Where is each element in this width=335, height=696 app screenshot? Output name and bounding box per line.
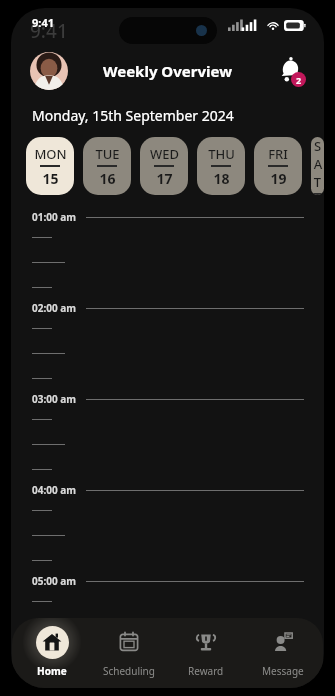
staticText: Message xyxy=(262,664,304,678)
staticText: 04:00 am xyxy=(32,483,77,497)
staticText: MON xyxy=(34,145,67,163)
staticText: Reward xyxy=(188,664,224,678)
button[interactable]: Reward xyxy=(169,623,243,678)
staticText: 18 xyxy=(213,169,230,188)
button[interactable]: Message xyxy=(246,623,320,678)
staticText: Monday, 15th September 2024 xyxy=(32,106,234,125)
staticText: 19 xyxy=(270,169,287,188)
button[interactable]: WED xyxy=(140,137,188,195)
staticText: 03:00 am xyxy=(32,392,77,406)
staticText: Scheduling xyxy=(103,664,155,678)
button[interactable]: Scheduling xyxy=(92,623,166,678)
staticText: 06:00 am xyxy=(32,665,77,679)
button[interactable]: 06:00 am xyxy=(11,664,324,680)
staticText: TUE xyxy=(95,145,120,163)
button[interactable]: Home xyxy=(15,623,89,678)
staticText: Weekly Overview xyxy=(103,61,232,81)
staticText: Home xyxy=(37,664,67,678)
button[interactable]: Notifications xyxy=(274,55,306,87)
staticText: 16 xyxy=(99,169,116,188)
button[interactable]: 03:00 am xyxy=(11,391,324,407)
button[interactable]: SAT xyxy=(311,137,324,195)
button[interactable]: THU xyxy=(197,137,245,195)
button[interactable]: 02:00 am xyxy=(11,300,324,316)
staticText: 9:41 xyxy=(30,18,68,42)
button[interactable]: FRI xyxy=(254,137,302,195)
staticText: 15 xyxy=(42,169,59,188)
button[interactable]: Profile xyxy=(30,52,68,90)
staticText: 2 xyxy=(296,74,302,86)
staticText: 02:00 am xyxy=(32,301,77,315)
staticText: 17 xyxy=(156,169,173,188)
button[interactable]: 04:00 am xyxy=(11,482,324,498)
staticText: THU xyxy=(208,145,235,163)
staticText: 9:41 xyxy=(32,15,54,30)
staticText: FRI xyxy=(268,145,288,163)
staticText: 01:00 am xyxy=(32,210,77,224)
button[interactable]: 05:00 am xyxy=(11,573,324,589)
button[interactable]: TUE xyxy=(83,137,131,195)
button[interactable]: 01:00 am xyxy=(11,209,324,225)
button[interactable]: MON xyxy=(26,137,74,195)
staticText: SAT xyxy=(311,137,324,191)
staticText: WED xyxy=(150,145,179,163)
staticText: 05:00 am xyxy=(32,574,77,588)
